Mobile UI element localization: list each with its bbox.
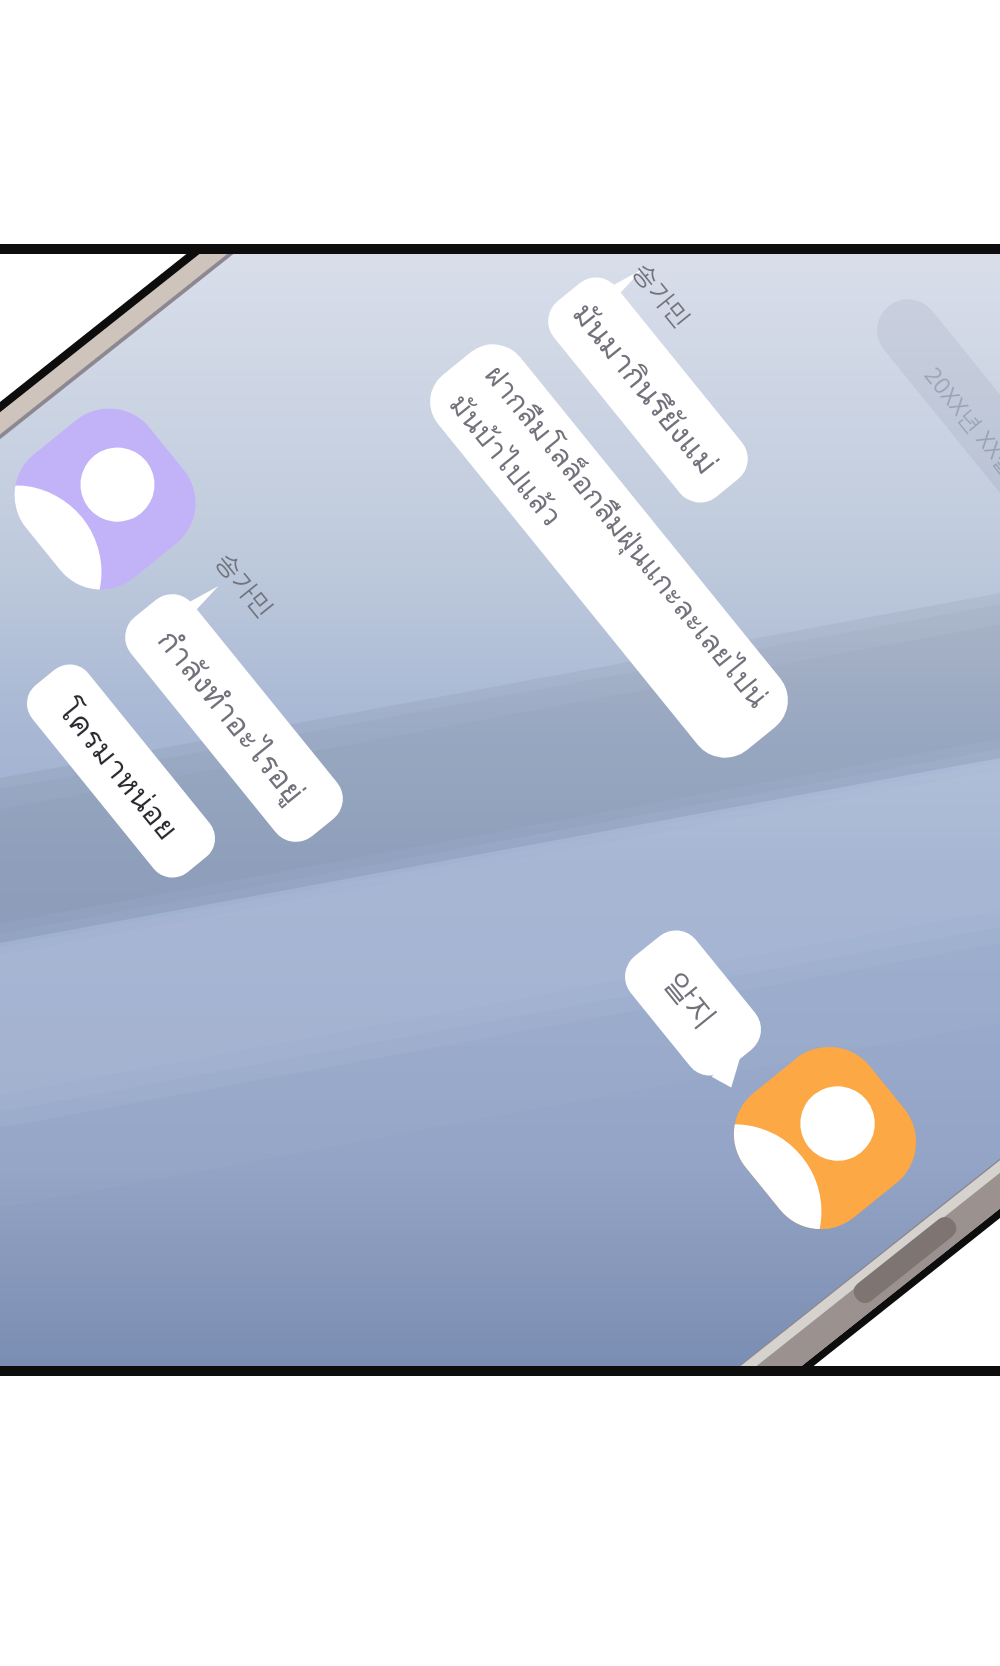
button[interactable]: Open profile of 송가민 xyxy=(15,409,195,589)
button[interactable]: Message: โครมาหน่อย xyxy=(26,659,216,883)
button[interactable]: Open my profile xyxy=(735,1048,915,1228)
button[interactable]: 20XX년 XX월 XX일 xyxy=(860,390,1000,510)
button[interactable]: Message: 알지 xyxy=(615,920,771,1086)
button[interactable]: Message: กำลังทำอะไรอยู่ xyxy=(125,593,343,843)
button[interactable]: Message: ฝากลืมโลล็อกลืมฝุ่นแกะละเลยไปน่ xyxy=(430,347,788,755)
button[interactable]: Message: มันมากินรึยังแม่ xyxy=(548,281,748,499)
